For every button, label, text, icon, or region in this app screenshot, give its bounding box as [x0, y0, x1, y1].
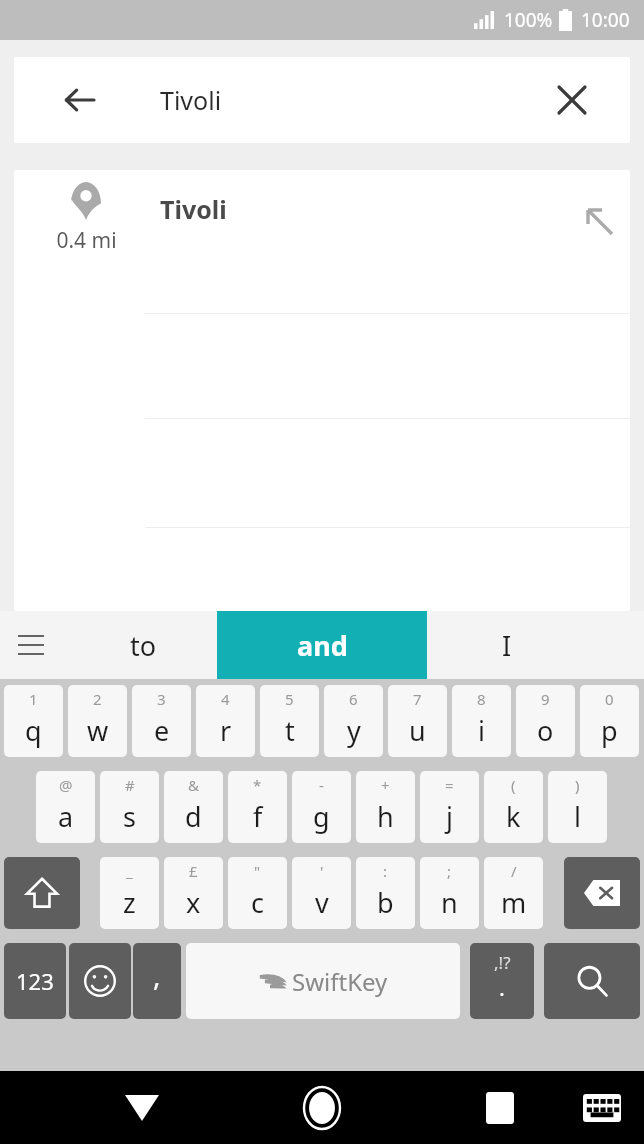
- button[interactable]: 123: [4, 943, 66, 1019]
- staticText: :: [383, 861, 388, 881]
- staticText: 7: [413, 689, 422, 709]
- staticText: i: [478, 712, 485, 749]
- button[interactable]: ): [548, 771, 607, 843]
- button[interactable]: Backspace: [564, 857, 640, 929]
- button[interactable]: ,: [133, 943, 181, 1019]
- staticText: @: [59, 775, 73, 795]
- staticText: 0: [605, 689, 614, 709]
- staticText: j: [446, 798, 453, 835]
- button[interactable]: I: [427, 611, 587, 679]
- staticText: g: [313, 798, 330, 835]
- button[interactable]: Switch keyboard: [568, 1074, 636, 1142]
- staticText: p: [601, 712, 618, 749]
- button[interactable]: (: [484, 771, 543, 843]
- button[interactable]: 5: [260, 685, 319, 757]
- staticText: ,: [153, 956, 161, 994]
- staticText: 100%: [504, 7, 553, 33]
- button[interactable]: -: [292, 771, 351, 843]
- staticText: ': [320, 861, 324, 881]
- staticText: +: [381, 775, 390, 795]
- button[interactable]: 0: [580, 685, 639, 757]
- button[interactable]: Search: [544, 943, 640, 1019]
- staticText: ,!?: [494, 951, 511, 974]
- staticText: k: [506, 798, 521, 835]
- staticText: 0.4 mi: [56, 226, 117, 255]
- staticText: ): [575, 775, 580, 795]
- button[interactable]: and: [217, 611, 427, 679]
- button[interactable]: ': [292, 857, 351, 929]
- staticText: b: [377, 884, 394, 921]
- button[interactable]: @: [36, 771, 95, 843]
- staticText: Tivoli: [160, 192, 227, 226]
- staticText: v: [315, 884, 329, 921]
- button[interactable]: 7: [388, 685, 447, 757]
- staticText: 8: [477, 689, 486, 709]
- staticText: *: [253, 775, 262, 795]
- button[interactable]: #: [100, 771, 159, 843]
- button[interactable]: 6: [324, 685, 383, 757]
- staticText: m: [501, 884, 527, 921]
- staticText: 9: [541, 689, 550, 709]
- button[interactable]: 9: [516, 685, 575, 757]
- button[interactable]: 4: [196, 685, 255, 757]
- button[interactable]: ": [228, 857, 287, 929]
- button[interactable]: Back: [50, 71, 108, 129]
- staticText: w: [87, 712, 109, 749]
- staticText: r: [220, 712, 232, 749]
- button[interactable]: Emoji: [69, 943, 131, 1019]
- staticText: #: [125, 775, 135, 795]
- staticText: s: [123, 798, 136, 835]
- button[interactable]: Open result: [570, 192, 628, 250]
- staticText: =: [445, 775, 454, 795]
- staticText: .: [499, 972, 505, 1002]
- button[interactable]: to: [70, 611, 217, 679]
- button[interactable]: &: [164, 771, 223, 843]
- button[interactable]: 8: [452, 685, 511, 757]
- button[interactable]: Space: [186, 943, 460, 1019]
- button[interactable]: ;: [420, 857, 479, 929]
- button[interactable]: *: [228, 771, 287, 843]
- staticText: ;: [447, 861, 452, 881]
- staticText: ": [254, 861, 261, 881]
- button[interactable]: +: [356, 771, 415, 843]
- staticText: _: [126, 861, 133, 881]
- button[interactable]: Home: [288, 1074, 356, 1142]
- staticText: 123: [16, 966, 54, 996]
- staticText: and: [297, 627, 348, 664]
- staticText: n: [441, 884, 458, 921]
- staticText: t: [285, 712, 295, 749]
- staticText: (: [511, 775, 516, 795]
- staticText: z: [123, 884, 136, 921]
- staticText: d: [185, 798, 202, 835]
- staticText: SwiftKey: [292, 965, 388, 998]
- staticText: to: [130, 627, 157, 664]
- button[interactable]: 3: [132, 685, 191, 757]
- staticText: -: [319, 775, 324, 795]
- staticText: I: [502, 627, 512, 664]
- staticText: h: [377, 798, 394, 835]
- button[interactable]: Recents: [466, 1074, 534, 1142]
- button[interactable]: Menu: [0, 611, 62, 679]
- button[interactable]: _: [100, 857, 159, 929]
- staticText: e: [154, 712, 170, 749]
- button[interactable]: Hide keyboard: [108, 1074, 176, 1142]
- button[interactable]: Shift: [4, 857, 80, 929]
- staticText: Tivoli: [160, 83, 222, 117]
- staticText: u: [409, 712, 426, 749]
- button[interactable]: 2: [68, 685, 127, 757]
- staticText: 4: [221, 689, 230, 709]
- button[interactable]: =: [420, 771, 479, 843]
- staticText: l: [574, 798, 581, 835]
- button[interactable]: /: [484, 857, 543, 929]
- button[interactable]: ,!?: [470, 943, 534, 1019]
- button[interactable]: 0.4 mi: [14, 170, 630, 611]
- staticText: f: [253, 798, 263, 835]
- staticText: 5: [285, 689, 294, 709]
- button[interactable]: 1: [4, 685, 63, 757]
- button[interactable]: Clear: [544, 72, 600, 128]
- staticText: /: [511, 861, 517, 881]
- staticText: &: [188, 775, 199, 795]
- button[interactable]: £: [164, 857, 223, 929]
- staticText: y: [347, 712, 361, 749]
- button[interactable]: :: [356, 857, 415, 929]
